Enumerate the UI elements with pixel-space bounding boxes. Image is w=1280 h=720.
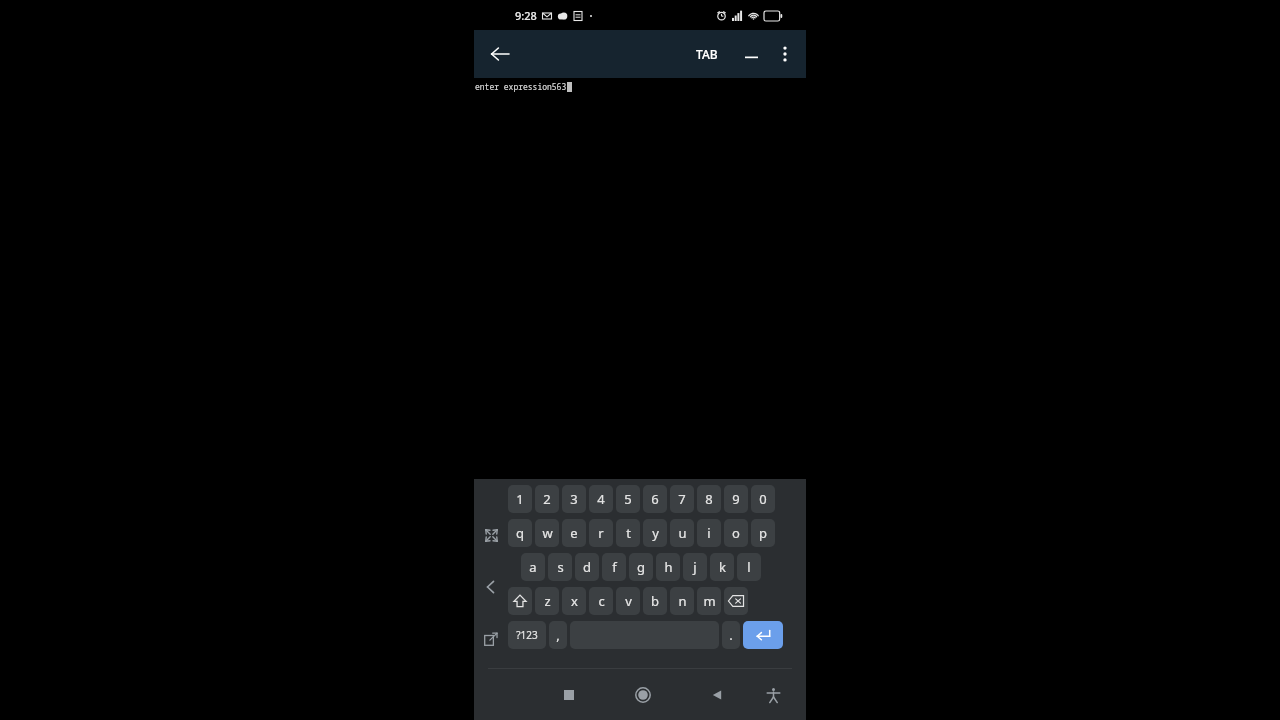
- staticText: h: [664, 558, 673, 576]
- staticText: ,: [556, 626, 560, 644]
- button[interactable]: 1: [508, 485, 532, 513]
- staticText: enter expression563: [475, 81, 567, 92]
- staticText: k: [719, 558, 726, 576]
- button[interactable]: Minimize: [738, 41, 764, 67]
- staticText: t: [626, 524, 631, 542]
- button[interactable]: q: [508, 519, 532, 547]
- staticText: q: [516, 524, 524, 542]
- button[interactable]: Back: [700, 678, 734, 712]
- staticText: g: [637, 558, 645, 576]
- staticText: p: [759, 524, 767, 542]
- button[interactable]: d: [575, 553, 599, 581]
- button[interactable]: k: [710, 553, 734, 581]
- staticText: TAB: [696, 46, 718, 62]
- staticText: i: [707, 524, 711, 542]
- staticText: e: [570, 524, 578, 542]
- button[interactable]: .: [722, 621, 740, 649]
- staticText: 1: [516, 490, 524, 508]
- staticText: j: [693, 558, 697, 576]
- button[interactable]: j: [683, 553, 707, 581]
- staticText: 4: [597, 490, 605, 508]
- button[interactable]: Back: [484, 38, 516, 70]
- button[interactable]: 7: [670, 485, 694, 513]
- button[interactable]: r: [589, 519, 613, 547]
- button[interactable]: Previous: [479, 575, 503, 599]
- button[interactable]: b: [643, 587, 667, 615]
- button[interactable]: Resize keyboard: [479, 523, 503, 547]
- button[interactable]: TAB: [690, 40, 724, 68]
- staticText: 5: [624, 490, 632, 508]
- staticText: 9: [732, 490, 740, 508]
- button[interactable]: 5: [616, 485, 640, 513]
- staticText: 2: [543, 490, 551, 508]
- staticText: v: [625, 592, 632, 610]
- staticText: 8: [705, 490, 713, 508]
- staticText: d: [583, 558, 591, 576]
- staticText: 9:28: [515, 8, 537, 23]
- button[interactable]: i: [697, 519, 721, 547]
- staticText: r: [598, 524, 604, 542]
- staticText: ?123: [516, 628, 538, 642]
- button[interactable]: Backspace: [724, 587, 748, 615]
- button[interactable]: 3: [562, 485, 586, 513]
- button[interactable]: Shift: [508, 587, 532, 615]
- staticText: a: [529, 558, 537, 576]
- button[interactable]: p: [751, 519, 775, 547]
- staticText: 3: [570, 490, 578, 508]
- staticText: 0: [759, 490, 767, 508]
- button[interactable]: g: [629, 553, 653, 581]
- button[interactable]: ?123: [508, 621, 546, 649]
- staticText: b: [651, 592, 659, 610]
- button[interactable]: v: [616, 587, 640, 615]
- staticText: w: [542, 524, 553, 542]
- staticText: f: [612, 558, 617, 576]
- staticText: o: [732, 524, 740, 542]
- button[interactable]: l: [737, 553, 761, 581]
- button[interactable]: 0: [751, 485, 775, 513]
- button[interactable]: x: [562, 587, 586, 615]
- staticText: y: [652, 524, 659, 542]
- button[interactable]: y: [643, 519, 667, 547]
- button[interactable]: o: [724, 519, 748, 547]
- staticText: m: [703, 592, 716, 610]
- staticText: 6: [651, 490, 659, 508]
- button[interactable]: Accessibility: [756, 678, 790, 712]
- button[interactable]: c: [589, 587, 613, 615]
- staticText: s: [557, 558, 564, 576]
- staticText: n: [678, 592, 687, 610]
- button[interactable]: h: [656, 553, 680, 581]
- button[interactable]: f: [602, 553, 626, 581]
- staticText: z: [544, 592, 551, 610]
- button[interactable]: 2: [535, 485, 559, 513]
- button[interactable]: a: [521, 553, 545, 581]
- button[interactable]: ,: [549, 621, 567, 649]
- button[interactable]: u: [670, 519, 694, 547]
- staticText: c: [598, 592, 605, 610]
- button[interactable]: s: [548, 553, 572, 581]
- button[interactable]: e: [562, 519, 586, 547]
- staticText: 7: [678, 490, 686, 508]
- button[interactable]: n: [670, 587, 694, 615]
- button[interactable]: Pop out keyboard: [479, 627, 503, 651]
- button[interactable]: 4: [589, 485, 613, 513]
- button[interactable]: 8: [697, 485, 721, 513]
- staticText: l: [747, 558, 751, 576]
- staticText: u: [678, 524, 687, 542]
- button[interactable]: w: [535, 519, 559, 547]
- button[interactable]: 6: [643, 485, 667, 513]
- button[interactable]: Enter: [743, 621, 783, 649]
- button[interactable]: t: [616, 519, 640, 547]
- button[interactable]: Recents: [552, 678, 586, 712]
- button[interactable]: Home: [626, 678, 660, 712]
- button[interactable]: More options: [772, 41, 798, 67]
- button[interactable]: z: [535, 587, 559, 615]
- button[interactable]: 9: [724, 485, 748, 513]
- button[interactable]: m: [697, 587, 721, 615]
- staticText: x: [571, 592, 578, 610]
- staticText: .: [729, 626, 733, 644]
